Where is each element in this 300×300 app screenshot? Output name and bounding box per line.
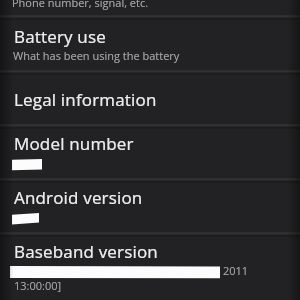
- staticText: Legal information: [14, 88, 157, 111]
- staticText: Phone number, signal, etc.: [12, 0, 149, 10]
- button[interactable]: [0, 17, 300, 71]
- button[interactable]: [0, 180, 300, 234]
- staticText: 13:00:00]: [14, 278, 62, 293]
- staticText: Android version: [14, 186, 143, 209]
- staticText: Model number: [14, 132, 134, 155]
- button[interactable]: [0, 126, 300, 180]
- button[interactable]: [0, 0, 300, 15]
- staticText: What has been using the battery: [13, 48, 180, 63]
- staticText: 2011: [223, 263, 249, 278]
- button[interactable]: [0, 72, 300, 126]
- staticText: Baseband version: [14, 240, 158, 263]
- staticText: Battery use: [14, 25, 106, 48]
- button[interactable]: [0, 234, 300, 296]
